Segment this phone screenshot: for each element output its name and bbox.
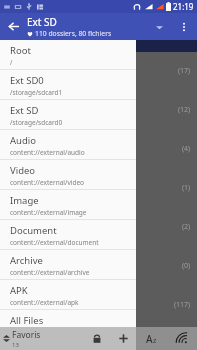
button[interactable]: Add (110, 327, 136, 350)
button[interactable]: Lock (84, 327, 110, 350)
button[interactable]: Archive (0, 250, 136, 279)
staticText: /storage/sdcard0 (10, 118, 63, 127)
staticText: A (146, 332, 153, 346)
staticText: (0) (182, 261, 191, 271)
button[interactable]: Video (0, 160, 136, 189)
staticText: content://external/video (10, 178, 85, 187)
staticText: content://external/image (10, 208, 87, 217)
staticText: Archive (10, 254, 43, 267)
staticText: Image (10, 194, 39, 207)
button[interactable]: Network (167, 327, 197, 350)
staticText: (4) (182, 144, 191, 154)
staticText: Audio (10, 134, 36, 147)
staticText: content://external/apk (10, 298, 79, 307)
button[interactable]: Audio (0, 130, 136, 159)
staticText: 110 dossiers, 80 fichiers (35, 29, 112, 38)
staticText: Ext SD (10, 104, 39, 117)
button[interactable]: Image (0, 190, 136, 219)
button[interactable]: APK (0, 280, 136, 309)
button[interactable]: More options (170, 13, 197, 40)
button[interactable]: Ext SD0 (0, 70, 136, 99)
staticText: 13 (12, 341, 19, 349)
button[interactable]: Sort (136, 327, 166, 350)
staticText: 21:19 (173, 1, 194, 12)
staticText: / (10, 58, 13, 67)
staticText: (17) (178, 66, 191, 76)
button[interactable]: Document (0, 220, 136, 249)
staticText: Ext SD0 (10, 74, 44, 87)
staticText: Root (10, 44, 31, 57)
staticText: (1) (182, 183, 191, 193)
staticText: APK (10, 284, 28, 297)
staticText: Favoris (12, 329, 41, 341)
staticText: /storage/sdcard1 (10, 88, 63, 97)
staticText: Document (10, 224, 57, 237)
staticText: Ext SD (27, 15, 57, 29)
button[interactable]: Favoris (0, 327, 84, 350)
button[interactable]: Ext SD (0, 100, 136, 129)
button[interactable]: Expand (148, 16, 170, 38)
button[interactable]: Root (0, 40, 136, 69)
staticText: Video (10, 164, 36, 177)
button[interactable]: All Files (0, 310, 136, 327)
staticText: content://external/audio (10, 148, 85, 157)
staticText: All Files (10, 314, 44, 327)
staticText: content://external/archive (10, 268, 90, 277)
staticText: (2) (182, 222, 191, 232)
staticText: (12) (178, 105, 191, 115)
staticText: (117) (174, 300, 191, 310)
button[interactable]: Back (0, 13, 27, 40)
staticText: z (153, 336, 157, 346)
staticText: content://external/document (10, 238, 99, 247)
